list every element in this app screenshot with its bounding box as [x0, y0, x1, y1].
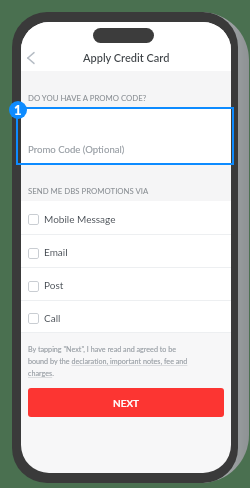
staticText: NEXT — [113, 397, 139, 409]
staticText: DO YOU HAVE A PROMO CODE? — [28, 93, 147, 102]
button[interactable]: Mobile Message — [21, 201, 231, 234]
staticText: SEND ME DBS PROMOTIONS VIA — [28, 186, 149, 195]
button[interactable]: NEXT — [28, 388, 224, 417]
button[interactable]: Promo Code (Optional) — [21, 108, 231, 164]
staticText: Promo Code (Optional) — [28, 144, 125, 156]
staticText: Mobile Message — [44, 213, 116, 225]
staticText: By tapping "Next", I have read and agree… — [28, 345, 194, 377]
staticText: 1 — [14, 102, 22, 118]
button[interactable]: Post — [21, 268, 231, 300]
button[interactable]: Call — [21, 301, 231, 332]
staticText: Apply Credit Card — [83, 51, 170, 64]
button[interactable]: Back — [21, 48, 40, 68]
staticText: Post — [44, 279, 64, 291]
staticText: Call — [44, 312, 61, 324]
staticText: Email — [44, 246, 68, 258]
button[interactable]: Email — [21, 235, 231, 267]
